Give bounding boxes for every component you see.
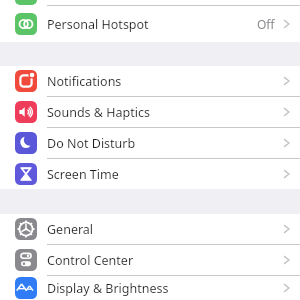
staticText: General [47, 221, 94, 238]
staticText: Sounds & Haptics [47, 104, 150, 121]
staticText: Off [257, 16, 275, 32]
button[interactable]: General [0, 214, 300, 245]
staticText: Notifications [47, 73, 122, 90]
button[interactable]: Sounds & Haptics [0, 97, 300, 128]
staticText: Control Center [47, 252, 134, 269]
button[interactable]: Notifications [0, 66, 300, 97]
button[interactable]: Do Not Disturb [0, 128, 300, 159]
staticText: Display & Brightness [47, 280, 169, 297]
staticText: Do Not Disturb [47, 135, 136, 152]
button[interactable]: Display & Brightness [0, 276, 300, 300]
staticText: Personal Hotspot [47, 16, 149, 33]
staticText: Screen Time [47, 166, 119, 183]
button[interactable]: Screen Time [0, 159, 300, 189]
button[interactable]: Personal Hotspot [0, 6, 300, 42]
button[interactable]: Control Center [0, 245, 300, 276]
